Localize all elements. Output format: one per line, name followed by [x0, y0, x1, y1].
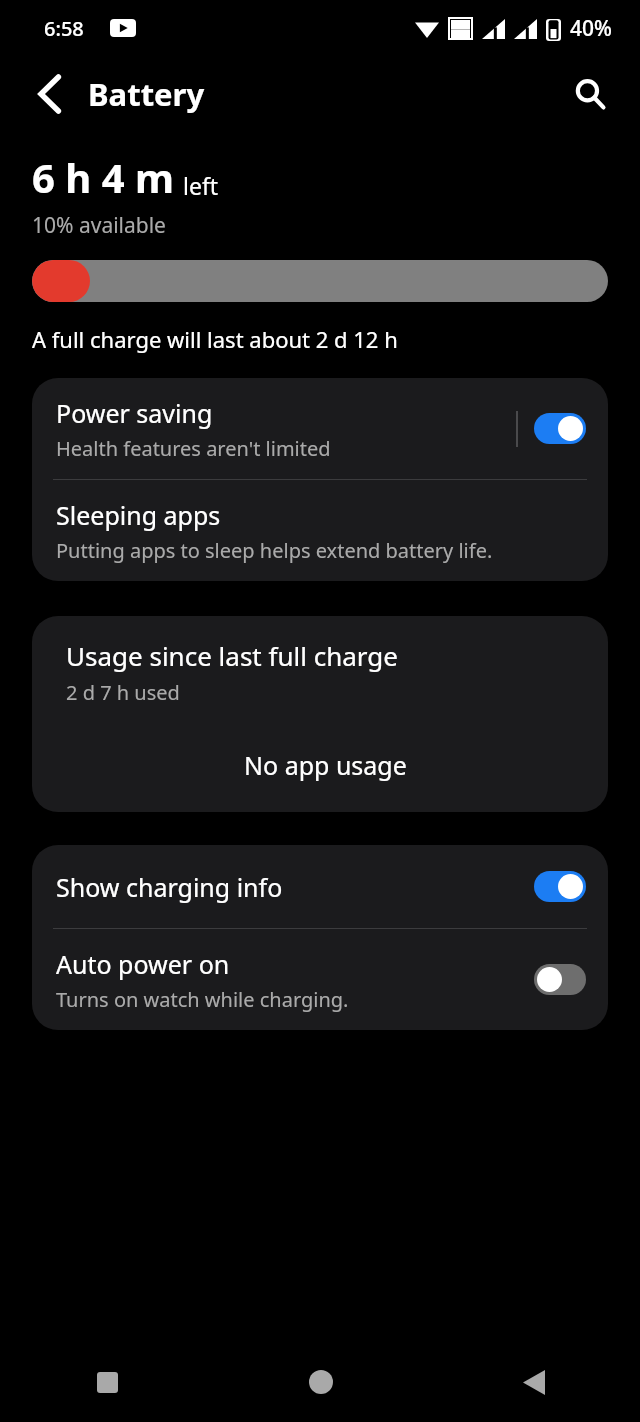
button[interactable]: Toggle on	[534, 871, 586, 902]
staticText: 40%	[570, 14, 612, 43]
staticText: Putting apps to sleep helps extend batte…	[56, 537, 493, 564]
staticText: Battery	[88, 73, 205, 115]
button[interactable]: Search	[562, 66, 618, 122]
staticText: left	[183, 170, 219, 201]
button[interactable]: Back	[427, 1342, 640, 1422]
button[interactable]: Show charging info	[32, 845, 608, 928]
staticText: Turns on watch while charging.	[56, 986, 349, 1013]
button[interactable]: Usage since last full charge	[32, 616, 608, 812]
staticText: Usage since last full charge	[66, 638, 398, 673]
staticText: Show charging info	[56, 870, 534, 904]
staticText: Health features aren't limited	[56, 435, 331, 462]
button[interactable]: Sleeping apps	[32, 480, 608, 581]
staticText: 6 h 4 m	[32, 150, 174, 204]
staticText: A full charge will last about 2 d 12 h	[32, 324, 398, 354]
staticText: No app usage	[244, 748, 407, 782]
button[interactable]: Recents	[0, 1342, 214, 1422]
button[interactable]: Toggle on	[534, 413, 586, 444]
staticText: Sleeping apps	[56, 498, 221, 532]
staticText: Auto power on	[56, 947, 230, 981]
staticText: 10% available	[32, 211, 166, 240]
button[interactable]: Back	[22, 66, 78, 122]
staticText: 6:58	[44, 15, 84, 42]
button[interactable]: Auto power on	[32, 929, 608, 1030]
button[interactable]: Power saving	[32, 378, 608, 479]
button[interactable]: Home	[214, 1342, 427, 1422]
staticText: Power saving	[56, 396, 213, 430]
button[interactable]: Toggle off	[534, 964, 586, 995]
staticText: 2 d 7 h used	[66, 679, 180, 706]
